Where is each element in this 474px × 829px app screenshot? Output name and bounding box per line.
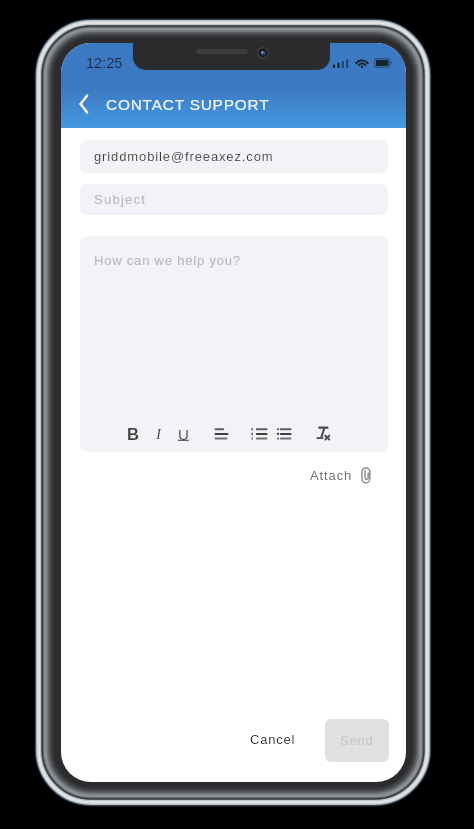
staticText: U — [178, 426, 189, 443]
button[interactable]: Send — [325, 719, 389, 762]
button[interactable]: Numbered list — [248, 423, 270, 445]
button[interactable]: U — [173, 423, 193, 445]
staticText: 12:25 — [86, 55, 123, 71]
button[interactable]: Subject — [80, 184, 388, 215]
button[interactable]: B — [123, 423, 143, 445]
staticText: I — [156, 426, 161, 443]
button[interactable]: How can we help you? — [80, 236, 388, 452]
button[interactable]: Back — [69, 82, 99, 125]
staticText: CONTACT SUPPORT — [106, 96, 270, 113]
staticText: Subject — [94, 192, 147, 207]
button[interactable]: I — [148, 423, 168, 445]
button[interactable]: Align text — [210, 423, 232, 445]
button[interactable]: Bulleted list — [273, 423, 295, 445]
staticText: B — [127, 425, 139, 443]
button[interactable]: Clear formatting — [312, 423, 334, 445]
staticText: Send — [340, 733, 374, 748]
other: Attach file — [361, 467, 371, 484]
staticText: Cancel — [250, 732, 296, 747]
staticText: griddmobile@freeaxez.com — [94, 149, 274, 164]
button[interactable]: griddmobile@freeaxez.com — [80, 140, 388, 173]
button[interactable]: Cancel — [244, 724, 302, 754]
staticText: How can we help you? — [94, 253, 241, 268]
staticText: Attach — [310, 468, 353, 483]
button[interactable]: Attach — [310, 462, 371, 488]
